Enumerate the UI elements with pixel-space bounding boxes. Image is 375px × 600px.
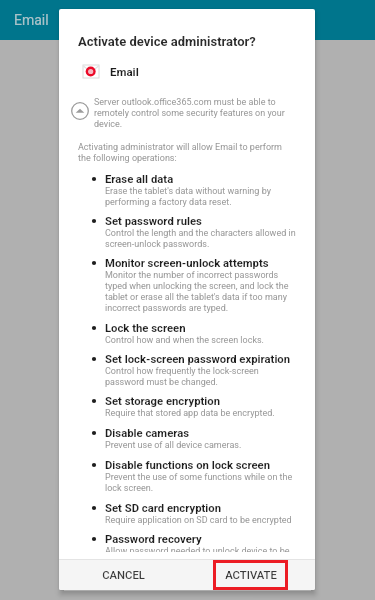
staticText: Disable functions on lock screen: [105, 458, 271, 471]
staticText: CANCEL: [102, 569, 145, 582]
staticText: Email: [14, 12, 49, 28]
staticText: Prevent use of all device cameras.: [105, 439, 242, 450]
staticText: Require application on SD card to be enc…: [105, 514, 292, 525]
staticText: Set SD card encryption: [105, 501, 222, 514]
staticText: Require that stored app data be encrypte…: [105, 407, 275, 418]
staticText: Erase the tablet's data without warning …: [105, 185, 296, 207]
staticText: Control how and when the screen locks.: [105, 334, 264, 345]
staticText: Prevent the use of some functions while …: [105, 471, 296, 493]
staticText: Monitor screen-unlock attempts: [105, 256, 269, 269]
button[interactable]: CANCEL: [59, 560, 187, 590]
staticText: Erase all data: [105, 172, 174, 185]
staticText: Password recovery: [105, 532, 202, 545]
staticText: Monitor the number of incorrect password…: [105, 269, 296, 313]
button[interactable]: ACTIVATE: [187, 560, 315, 590]
staticText: Server outlook.office365.com must be abl…: [94, 96, 312, 129]
button[interactable]: Collapse details: [71, 102, 89, 120]
staticText: Lock the screen: [105, 321, 186, 334]
staticText: ACTIVATE: [225, 569, 277, 582]
staticText: Control how frequently the lock-screen p…: [105, 365, 296, 387]
staticText: Control the length and the characters al…: [105, 227, 296, 249]
staticText: Disable cameras: [105, 426, 190, 439]
staticText: Set password rules: [105, 214, 202, 227]
staticText: Activate device administrator?: [78, 34, 256, 49]
staticText: Email: [110, 65, 139, 78]
staticText: Activating administrator will allow Emai…: [78, 141, 296, 163]
staticText: Allow password needed to unlock device t…: [105, 545, 296, 552]
staticText: Set lock-screen password expiration: [105, 352, 291, 365]
staticText: Set storage encryption: [105, 394, 221, 407]
